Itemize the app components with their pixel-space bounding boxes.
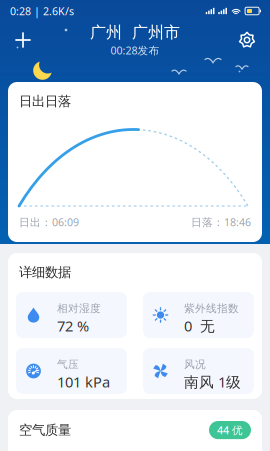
staticText: 0 无: [184, 316, 215, 336]
staticText: 日出日落: [19, 93, 71, 109]
staticText: 00:28发布: [110, 43, 159, 57]
staticText: 空气质量: [19, 422, 71, 438]
staticText: 详细数据: [19, 264, 71, 280]
staticText: 南风 1级: [184, 372, 241, 392]
button[interactable]: 44 优: [209, 421, 251, 439]
staticText: 日落：18:46: [191, 215, 251, 229]
staticText: 紫外线指数: [184, 302, 239, 315]
staticText: 101 kPa: [57, 372, 110, 392]
staticText: 广州 广州市: [90, 23, 180, 42]
button[interactable]: Settings: [231, 24, 263, 56]
staticText: 气压: [57, 358, 79, 371]
staticText: 风况: [184, 358, 206, 371]
staticText: 日出：06:09: [19, 215, 79, 229]
staticText: 0:28 | 2.6K/s: [10, 4, 74, 18]
staticText: 相对湿度: [57, 302, 101, 315]
button[interactable]: Add city: [7, 24, 39, 56]
staticText: 44 优: [217, 423, 243, 437]
staticText: 72 %: [57, 316, 89, 336]
